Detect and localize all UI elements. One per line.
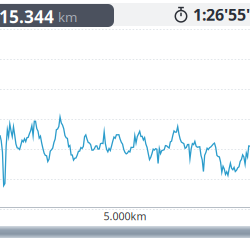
staticText: 15.344: [0, 5, 54, 28]
staticText: 5.000km: [103, 209, 146, 223]
staticText: km: [58, 8, 77, 26]
staticText: 1:26'55": [193, 4, 250, 25]
button[interactable]: 15.344: [0, 4, 114, 27]
button[interactable]: 1:26'55": [174, 4, 250, 25]
